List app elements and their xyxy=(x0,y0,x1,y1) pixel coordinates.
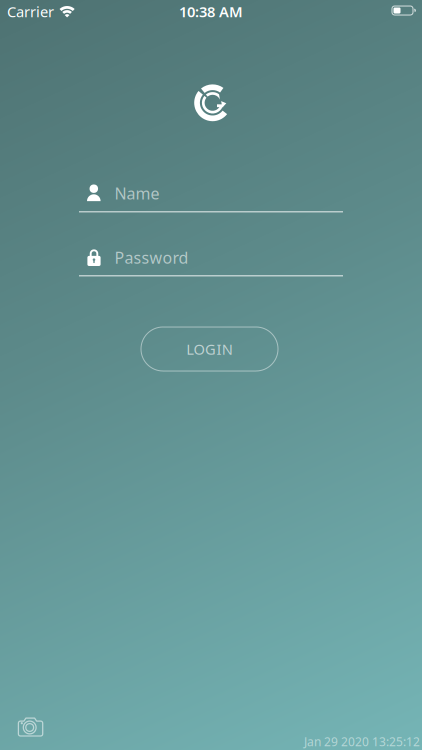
staticText: 10:38 AM xyxy=(179,2,243,21)
button[interactable]: LOGIN xyxy=(141,327,278,371)
staticText: Carrier xyxy=(7,2,54,21)
staticText: LOGIN xyxy=(186,339,233,359)
button[interactable]: Take photo xyxy=(14,716,46,740)
staticText: Jan 29 2020 13:25:12 xyxy=(304,733,420,749)
staticText: Name xyxy=(114,183,159,204)
button[interactable]: Password xyxy=(79,245,343,279)
button[interactable]: Name xyxy=(79,181,343,215)
staticText: Password xyxy=(114,247,188,268)
